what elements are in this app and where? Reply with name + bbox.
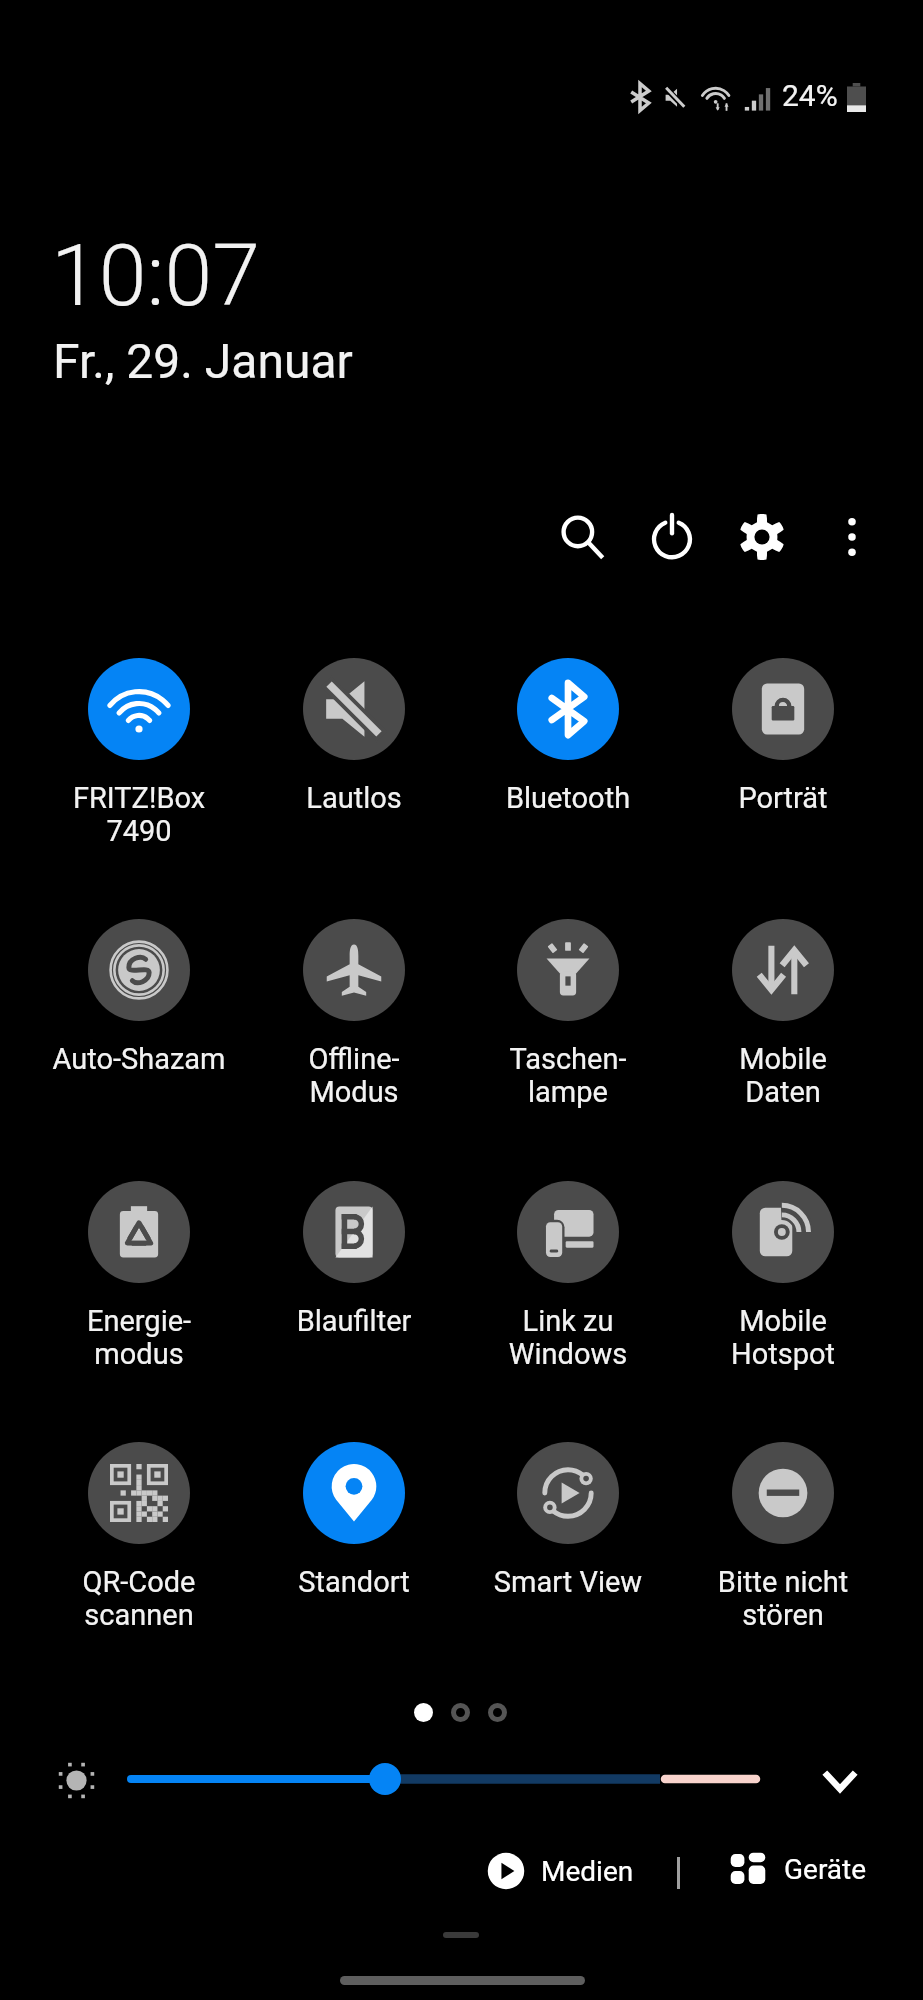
staticText: Smart View: [461, 1565, 675, 1599]
button[interactable]: Geräte: [730, 1852, 867, 1886]
staticText: FRITZ!Box 7490: [32, 781, 246, 848]
button[interactable]: Mobile Hotspot: [676, 1175, 890, 1371]
staticText: Porträt: [676, 781, 890, 815]
staticText: Bluetooth: [461, 781, 675, 815]
staticText: Standort: [247, 1565, 461, 1599]
button[interactable]: Blaufilter: [247, 1175, 461, 1338]
button[interactable]: Mobile Daten: [676, 913, 890, 1109]
staticText: Mobile Daten: [676, 1042, 890, 1109]
button[interactable]: Bluetooth: [461, 652, 675, 815]
button[interactable]: Auto-Shazam: [32, 913, 246, 1076]
staticText: Fr., 29. Januar: [53, 333, 353, 389]
button[interactable]: Search: [545, 500, 619, 574]
staticText: Medien: [541, 1855, 634, 1888]
staticText: Energie- modus: [32, 1304, 246, 1371]
staticText: Taschen- lampe: [461, 1042, 675, 1109]
staticText: 10:07: [51, 225, 260, 326]
button[interactable]: FRITZ!Box 7490: [32, 652, 246, 848]
staticText: Lautlos: [247, 781, 461, 815]
staticText: QR-Code scannen: [32, 1565, 246, 1632]
button[interactable]: Taschen- lampe: [461, 913, 675, 1109]
staticText: 24%: [782, 78, 838, 113]
staticText: Link zu Windows: [461, 1304, 675, 1371]
button[interactable]: Energie- modus: [32, 1175, 246, 1371]
button[interactable]: Settings: [725, 500, 799, 574]
button[interactable]: More options: [815, 500, 889, 574]
button[interactable]: Porträt: [676, 652, 890, 815]
button[interactable]: Smart View: [461, 1436, 675, 1599]
staticText: Geräte: [784, 1853, 867, 1886]
button[interactable]: Expand: [822, 1768, 858, 1796]
button[interactable]: Standort: [247, 1436, 461, 1599]
button[interactable]: Bitte nicht stören: [676, 1436, 890, 1632]
staticText: Bitte nicht stören: [676, 1565, 890, 1632]
button[interactable]: Offline- Modus: [247, 913, 461, 1109]
button[interactable]: Link zu Windows: [461, 1175, 675, 1371]
button[interactable]: [120, 1755, 780, 1803]
staticText: Blaufilter: [247, 1304, 461, 1338]
button[interactable]: Power: [635, 500, 709, 574]
button[interactable]: Auto brightness: [55, 1759, 98, 1802]
button[interactable]: QR-Code scannen: [32, 1436, 246, 1632]
staticText: Mobile Hotspot: [676, 1304, 890, 1371]
button[interactable]: Lautlos: [247, 652, 461, 815]
button[interactable]: Medien: [487, 1852, 634, 1890]
staticText: Auto-Shazam: [32, 1042, 246, 1076]
staticText: Offline- Modus: [247, 1042, 461, 1109]
